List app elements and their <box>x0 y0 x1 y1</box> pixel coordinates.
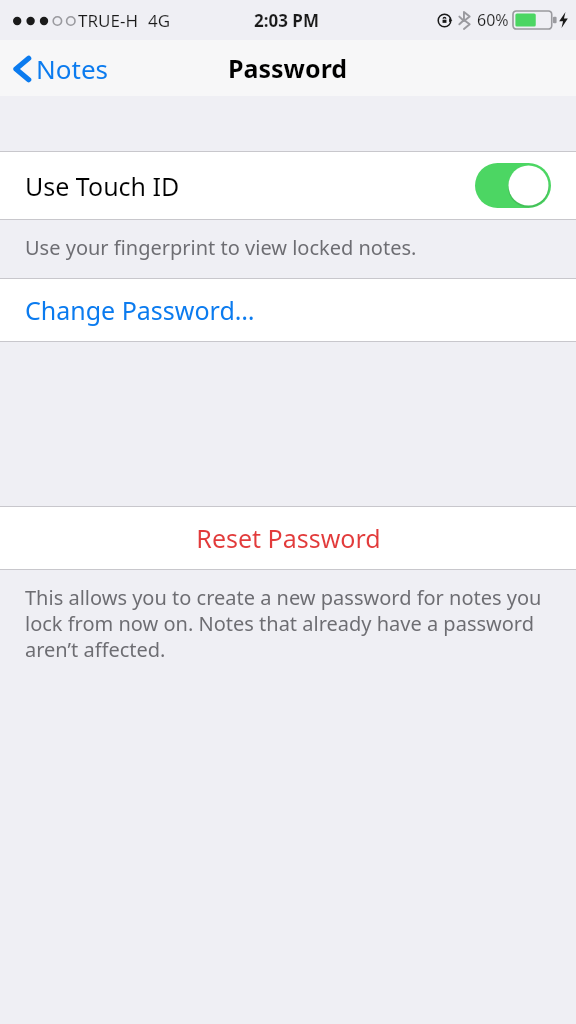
staticText: Reset Password <box>196 521 381 555</box>
staticText: Change Password… <box>25 293 255 327</box>
staticText: Use Touch ID <box>25 169 180 203</box>
staticText: TRUE-H <box>78 9 138 32</box>
staticText: 60% <box>477 9 509 31</box>
staticText: This allows you to create a new password… <box>25 584 554 663</box>
button[interactable]: Reset Password <box>0 507 576 569</box>
button[interactable]: Notes <box>0 45 122 92</box>
staticText: Use your fingerprint to view locked note… <box>25 234 417 261</box>
button[interactable]: Use Touch ID <box>0 152 576 219</box>
button[interactable]: Change Password… <box>0 279 576 341</box>
staticText: 2:03 PM <box>254 9 319 32</box>
staticText: Notes <box>36 51 108 86</box>
staticText: Password <box>228 51 348 85</box>
button[interactable]: Use Touch ID toggle, on <box>475 163 551 208</box>
staticText: 4G <box>148 9 171 32</box>
